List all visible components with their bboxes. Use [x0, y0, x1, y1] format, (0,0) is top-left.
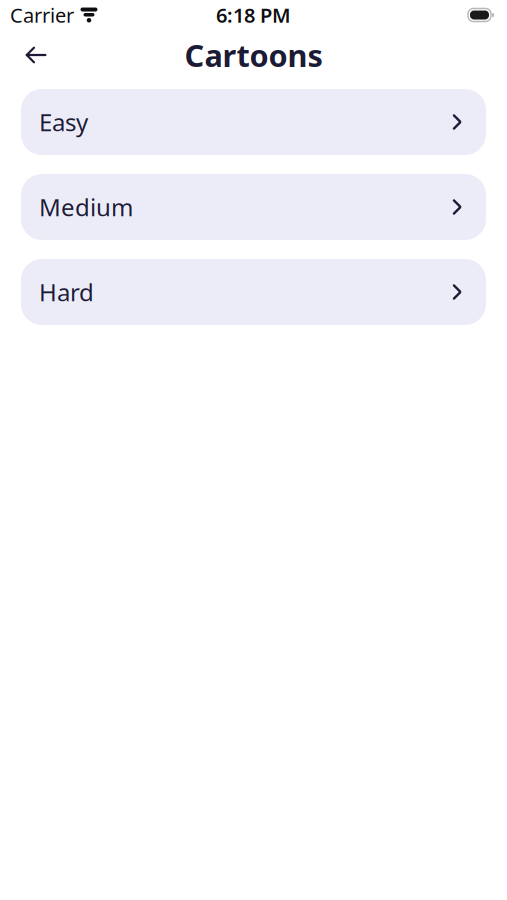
staticText: Hard: [39, 276, 94, 308]
staticText: Easy: [39, 106, 88, 138]
button[interactable]: Medium: [21, 174, 486, 240]
staticText: 6:18 PM: [216, 2, 291, 28]
button[interactable]: Back: [14, 33, 58, 77]
button[interactable]: Easy: [21, 89, 486, 155]
staticText: Carrier: [10, 2, 74, 28]
button[interactable]: Hard: [21, 259, 486, 325]
staticText: Cartoons: [184, 35, 322, 75]
staticText: Medium: [39, 191, 133, 223]
